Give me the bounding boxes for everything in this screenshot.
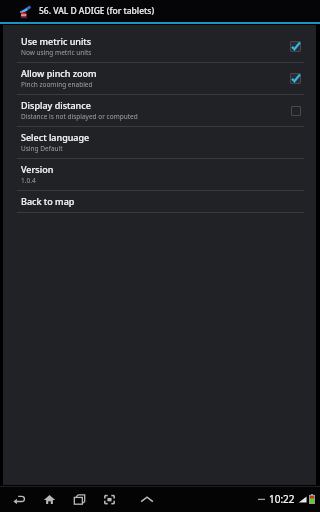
button[interactable]: Unchecked	[289, 104, 302, 117]
button[interactable]: Back to map	[3, 191, 316, 212]
button[interactable]: Home	[38, 486, 60, 512]
staticText: Pinch zooming enabled	[21, 80, 93, 89]
button[interactable]: Checked	[289, 40, 302, 53]
staticText: 10:22	[269, 492, 295, 506]
button[interactable]: Display distance	[3, 95, 316, 126]
button[interactable]: Screenshot	[98, 486, 120, 512]
button[interactable]: Select language	[3, 127, 316, 158]
staticText: Allow pinch zoom	[21, 67, 97, 79]
staticText: Version	[21, 163, 54, 175]
staticText: Using Default	[21, 144, 63, 153]
staticText: Back to map	[21, 195, 75, 207]
button[interactable]: Use metric units	[3, 31, 316, 62]
staticText: Display distance	[21, 99, 91, 111]
staticText: 56. VAL D ADIGE (for tablets)	[39, 5, 155, 17]
staticText: Use metric units	[21, 35, 92, 47]
button[interactable]: Allow pinch zoom	[3, 63, 316, 94]
button[interactable]: Version	[3, 159, 316, 190]
button[interactable]: Recent apps	[68, 486, 90, 512]
button[interactable]: Back	[8, 486, 30, 512]
staticText: Distance is not displayed or computed	[21, 112, 138, 121]
staticText: Select language	[21, 131, 90, 143]
staticText: Now using metric units	[21, 48, 92, 57]
button[interactable]: Show menu	[136, 486, 158, 512]
button[interactable]: Checked	[289, 72, 302, 85]
staticText: 1.0.4	[21, 176, 36, 185]
